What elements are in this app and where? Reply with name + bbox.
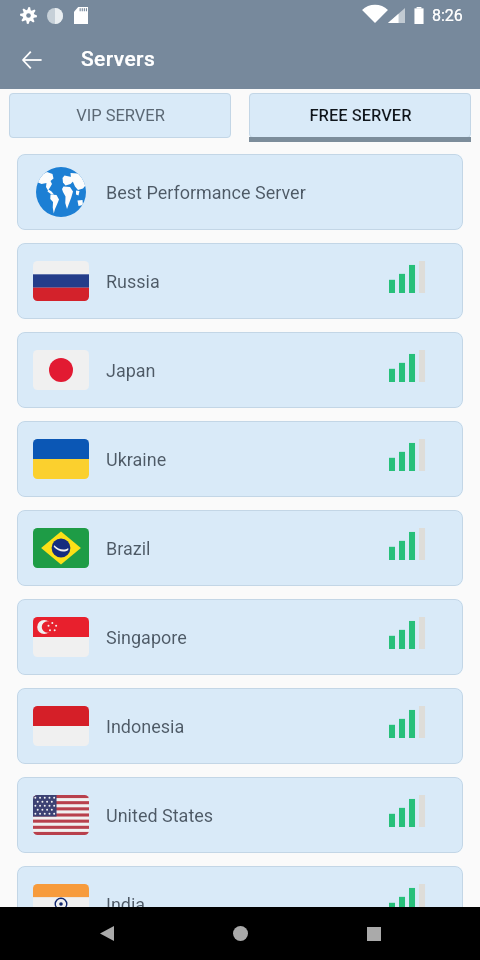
staticText: Japan bbox=[106, 360, 156, 381]
button[interactable]: Recents bbox=[347, 907, 401, 960]
button[interactable]: FREE SERVER bbox=[249, 93, 471, 142]
staticText: 8:26 bbox=[432, 6, 463, 25]
button[interactable]: Ukraine bbox=[17, 421, 463, 497]
staticText: Singapore bbox=[106, 627, 187, 648]
button[interactable]: VIP SERVER bbox=[9, 93, 231, 142]
staticText: Best Performance Server bbox=[106, 182, 306, 203]
staticText: FREE SERVER bbox=[309, 106, 412, 125]
staticText: Ukraine bbox=[106, 449, 167, 470]
staticText: Indonesia bbox=[106, 716, 185, 737]
button[interactable]: Best Performance Server bbox=[17, 154, 463, 230]
button[interactable]: United States bbox=[17, 777, 463, 853]
staticText: Servers bbox=[81, 47, 156, 72]
button[interactable]: India bbox=[17, 866, 463, 942]
button[interactable]: Back bbox=[8, 36, 56, 84]
button[interactable]: Brazil bbox=[17, 510, 463, 586]
staticText: Brazil bbox=[106, 538, 151, 559]
staticText: VIP SERVER bbox=[76, 106, 165, 125]
button[interactable]: Back bbox=[80, 907, 134, 960]
button[interactable]: Japan bbox=[17, 332, 463, 408]
button[interactable]: Singapore bbox=[17, 599, 463, 675]
button[interactable]: Home bbox=[213, 907, 267, 960]
staticText: Russia bbox=[106, 271, 160, 292]
button[interactable]: Indonesia bbox=[17, 688, 463, 764]
staticText: India bbox=[106, 894, 146, 915]
staticText: United States bbox=[106, 805, 214, 826]
button[interactable]: Russia bbox=[17, 243, 463, 319]
